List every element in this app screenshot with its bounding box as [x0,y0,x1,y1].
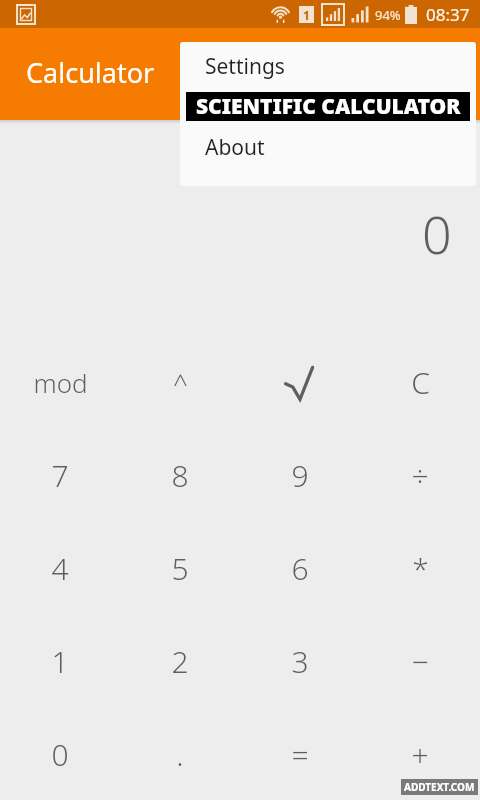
staticText: SCIENTIFIC CALCULATOR [196,92,461,121]
staticText: − [411,641,429,682]
staticText: = [291,734,309,775]
staticText: ADDTEXT.COM [404,780,475,794]
button[interactable]: Power [120,336,240,429]
staticText: 3 [291,641,309,682]
staticText: 08:37 [426,3,470,26]
staticText: 4 [51,548,69,589]
staticText: About [205,133,265,162]
staticText: 7 [51,455,69,496]
button[interactable]: Add [360,708,480,800]
staticText: Calculator [26,54,155,91]
staticText: 94% [375,6,401,24]
button[interactable]: 3 [240,615,360,708]
button[interactable]: Divide [360,429,480,522]
staticText: 5 [171,548,189,589]
staticText: 2 [171,641,189,682]
button[interactable]: Multiply [360,522,480,615]
button[interactable]: Settings [180,42,476,90]
button[interactable]: 6 [240,522,360,615]
staticText: . [176,734,184,775]
staticText: ^ [173,365,188,400]
button[interactable]: 5 [120,522,240,615]
button[interactable]: 1 [0,615,120,708]
staticText: C [411,362,430,403]
staticText: 1 [51,641,69,682]
staticText: 6 [291,548,309,589]
button[interactable]: Equals [240,708,360,800]
button[interactable]: Subtract [360,615,480,708]
button[interactable]: mod [0,336,120,429]
button[interactable]: 4 [0,522,120,615]
button[interactable]: SCIENTIFIC CALCULATOR [180,90,476,123]
staticText: 9 [291,455,309,496]
staticText: 0 [51,734,69,775]
staticText: ÷ [411,455,429,496]
staticText: Settings [205,52,285,81]
staticText: 1 [303,7,310,23]
button[interactable]: Clear [360,336,480,429]
staticText: 0 [422,198,452,269]
staticText: mod [33,365,88,400]
button[interactable]: Square root [240,336,360,429]
button[interactable]: 7 [0,429,120,522]
button[interactable]: 2 [120,615,240,708]
staticText: * [412,548,429,589]
button[interactable]: 9 [240,429,360,522]
staticText: 8 [171,455,189,496]
staticText: + [411,734,429,775]
button[interactable]: About [180,123,476,171]
button[interactable]: 8 [120,429,240,522]
button[interactable]: 0 [0,708,120,800]
